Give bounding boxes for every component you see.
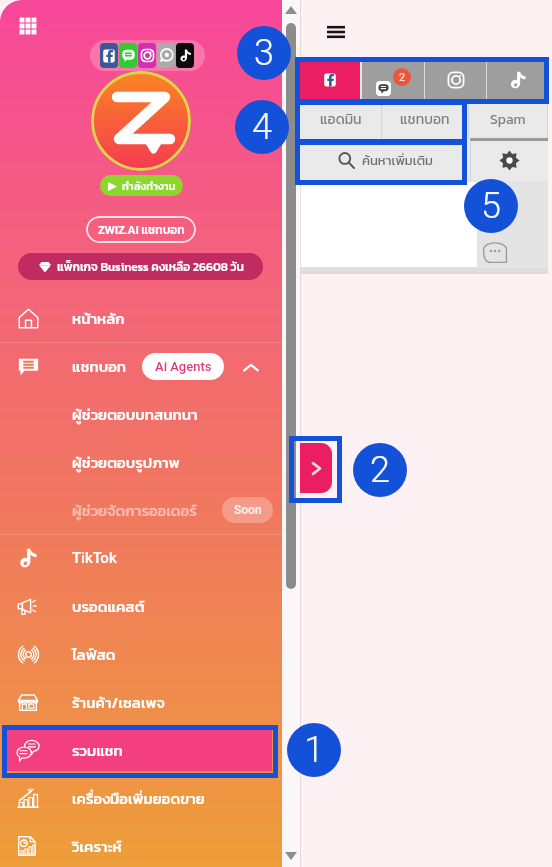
button[interactable]: ผู้ช่วยตอบบทสนทนา bbox=[0, 390, 282, 438]
button[interactable]: ไลฟ์สด bbox=[0, 630, 282, 678]
staticText: กำลังทำงาน bbox=[122, 178, 176, 194]
button[interactable]: TikTok bbox=[0, 534, 282, 582]
staticText: แพ็กเกจ Business คงเหลือ 26608 วัน bbox=[57, 258, 244, 276]
button[interactable]: ร้านค้า/เซลเพจ bbox=[0, 678, 282, 726]
staticText: ร้านค้า/เซลเพจ bbox=[72, 691, 165, 713]
button[interactable]: กำลังทำงาน bbox=[100, 175, 183, 196]
staticText: Spam bbox=[490, 109, 526, 130]
button[interactable]: แพ็กเกจ Business คงเหลือ 26608 วัน bbox=[18, 253, 263, 280]
staticText: 3 bbox=[254, 32, 274, 74]
button[interactable]: Profile bbox=[91, 71, 191, 171]
button[interactable]: ค้นหาเพิ่มเติม bbox=[300, 140, 470, 181]
staticText: ไลฟ์สด bbox=[72, 643, 116, 665]
button[interactable]: แอดมิน bbox=[300, 100, 381, 139]
button[interactable]: ZWIZ.AI แชทบอท bbox=[86, 216, 196, 243]
staticText: 2 bbox=[370, 449, 390, 491]
button[interactable]: Menu bbox=[318, 14, 354, 50]
staticText: 5 bbox=[481, 185, 501, 227]
button[interactable]: Soon bbox=[222, 497, 273, 523]
button[interactable]: แชทบอท bbox=[0, 342, 282, 390]
staticText: TikTok bbox=[72, 549, 117, 567]
button[interactable]: Spam bbox=[469, 100, 547, 139]
staticText: ZWIZ.AI แชทบอท bbox=[98, 221, 185, 239]
button[interactable]: บรอดแคสต์ bbox=[0, 582, 282, 630]
staticText: Ai Agents bbox=[155, 359, 212, 374]
staticText: เครื่องมือเพิ่มยอดขาย bbox=[72, 787, 205, 809]
button[interactable]: หน้าหลัก bbox=[0, 294, 282, 342]
staticText: 2 bbox=[399, 71, 406, 84]
staticText: บรอดแคสต์ bbox=[72, 595, 145, 617]
button[interactable]: Line bbox=[119, 43, 137, 68]
button[interactable]: Facebook channel bbox=[300, 61, 360, 99]
button[interactable]: ผู้ช่วยตอบรูปภาพ bbox=[0, 438, 282, 486]
staticText: 4 bbox=[252, 106, 272, 148]
staticText: 1 bbox=[304, 729, 324, 771]
button[interactable]: แชทบอท bbox=[382, 100, 468, 139]
button[interactable]: วิเคราะห์ bbox=[0, 822, 282, 867]
button[interactable]: เครื่องมือเพิ่มยอดขาย bbox=[0, 774, 282, 822]
button[interactable]: Collapse bbox=[240, 357, 262, 379]
button[interactable]: WhatsApp bbox=[157, 43, 175, 68]
button[interactable]: Line channel bbox=[362, 61, 424, 99]
staticText: วิเคราะห์ bbox=[72, 835, 122, 857]
staticText: ค้นหาเพิ่มเติม bbox=[362, 151, 433, 170]
staticText: Soon bbox=[234, 503, 262, 517]
button[interactable]: Instagram channel bbox=[425, 61, 486, 99]
button[interactable]: Instagram bbox=[138, 43, 156, 68]
staticText: ผู้ช่วยตอบบทสนทนา bbox=[72, 403, 198, 425]
staticText: แชทบอท bbox=[400, 109, 450, 130]
staticText: แอดมิน bbox=[320, 109, 362, 130]
button[interactable]: TikTok channel bbox=[487, 61, 548, 99]
staticText: หน้าหลัก bbox=[72, 307, 125, 329]
staticText: แชทบอท bbox=[72, 355, 127, 377]
button[interactable]: TikTok bbox=[176, 43, 194, 68]
button[interactable]: Facebook bbox=[100, 43, 118, 68]
button[interactable]: Apps bbox=[12, 10, 44, 42]
button[interactable]: รวมแชท bbox=[0, 726, 282, 774]
button[interactable]: ผู้ช่วยจัดการออเดอร์ bbox=[0, 486, 282, 534]
button[interactable]: Settings bbox=[471, 140, 548, 181]
button[interactable]: Ai Agents bbox=[142, 353, 224, 380]
staticText: ผู้ช่วยตอบรูปภาพ bbox=[72, 451, 180, 473]
staticText: รวมแชท bbox=[72, 739, 123, 761]
button[interactable]: Expand chat list bbox=[300, 443, 332, 493]
staticText: ผู้ช่วยจัดการออเดอร์ bbox=[72, 499, 197, 521]
